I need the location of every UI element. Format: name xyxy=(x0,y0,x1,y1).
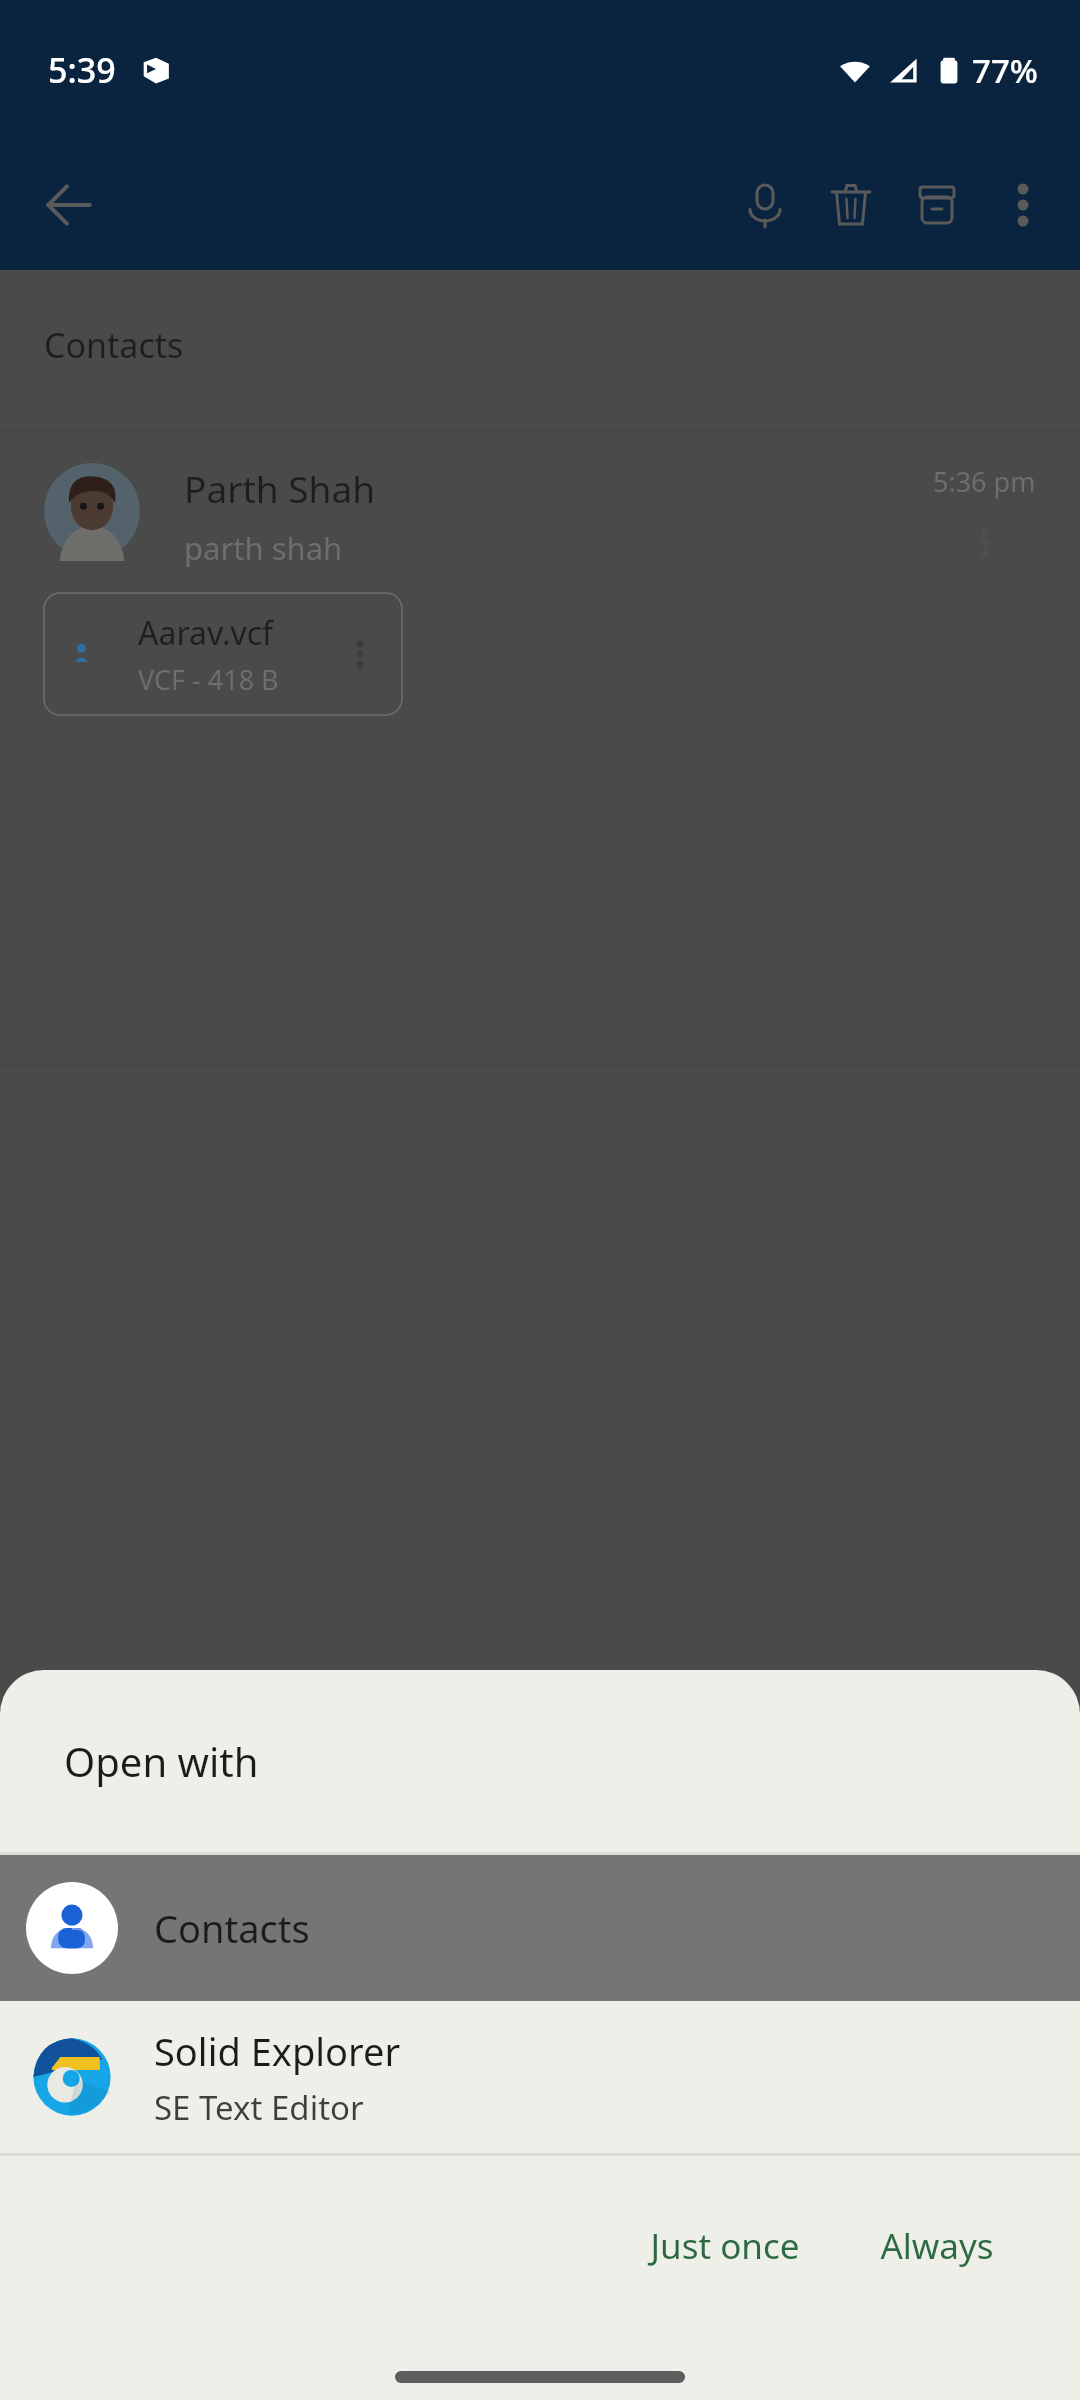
button[interactable]: Attachment options xyxy=(338,632,382,676)
staticText: 77% xyxy=(972,48,1038,93)
button[interactable]: Voice message xyxy=(722,162,808,248)
staticText: Open with xyxy=(64,1734,259,1788)
button[interactable]: Contacts xyxy=(0,1855,1080,2001)
staticText: 5:39 xyxy=(48,47,116,93)
staticText: VCF - 418 B xyxy=(138,661,279,698)
button[interactable]: More options xyxy=(980,162,1066,248)
button[interactable]: Aarav.vcf xyxy=(44,593,402,715)
button[interactable]: Delete xyxy=(808,162,894,248)
button[interactable]: Always xyxy=(850,2200,1024,2292)
staticText: Always xyxy=(880,2222,994,2270)
button[interactable]: Parth Shah xyxy=(0,431,1080,569)
button[interactable]: Archive xyxy=(894,162,980,248)
button[interactable]: Back xyxy=(24,161,112,249)
button[interactable]: Solid Explorer xyxy=(0,2001,1080,2153)
staticText: Just once xyxy=(650,2222,800,2270)
staticText: Contacts xyxy=(44,322,184,368)
staticText: 5:36 pm xyxy=(933,463,1036,500)
staticText: parth shah xyxy=(184,527,343,569)
staticText: Parth Shah xyxy=(184,463,376,513)
button[interactable]: Just once xyxy=(620,2200,830,2292)
staticText: Aarav.vcf xyxy=(138,611,274,655)
staticText: SE Text Editor xyxy=(154,2085,364,2130)
staticText: Contacts xyxy=(154,1902,310,1954)
staticText: Solid Explorer xyxy=(154,2025,401,2077)
